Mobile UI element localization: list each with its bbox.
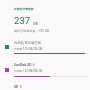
staticText: 237 <box>14 15 31 26</box>
button[interactable]: SD 卡 <box>0 85 90 90</box>
button[interactable]: SanDisk SD 卡 <box>0 62 90 85</box>
staticText: 内部共享存储空间 <box>14 41 42 45</box>
staticText: 存储空间管理器 <box>14 7 34 11</box>
staticText: 储存空间剩余量：375 GB <box>14 29 50 33</box>
staticText: SD 卡 <box>14 85 23 89</box>
staticText: 已使用 133 GB/256 GB <box>14 47 43 51</box>
staticText: SanDisk SD 卡 <box>14 63 36 67</box>
staticText: GB <box>33 21 38 25</box>
button[interactable]: 内部共享存储空间 <box>0 39 90 62</box>
button[interactable]: 存储空间管理器 <box>14 7 34 11</box>
staticText: 已使用 123 GB/256 GB <box>14 69 43 73</box>
